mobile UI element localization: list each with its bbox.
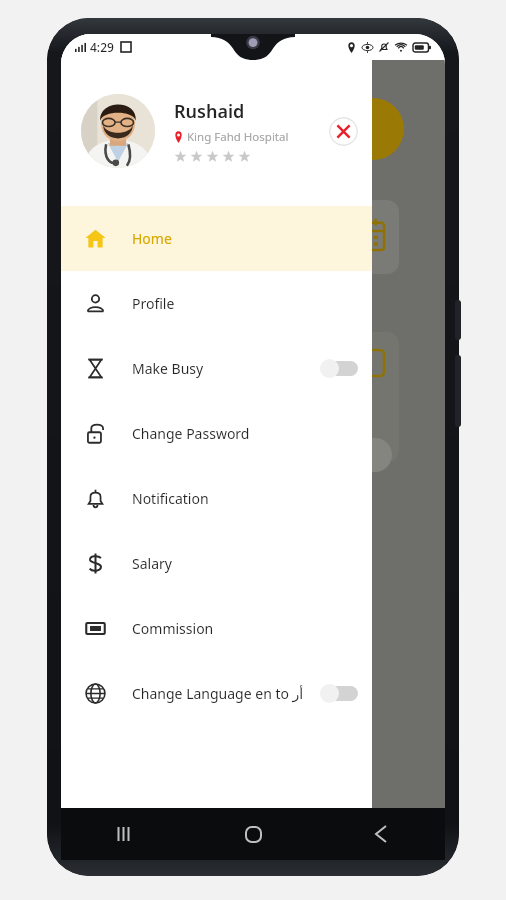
staticText: Rushaid [174,99,245,124]
button[interactable]: Home [189,808,317,860]
staticText: Make Busy [132,359,204,378]
staticText: Change Password [132,424,250,443]
button[interactable]: Toggle [320,684,358,703]
staticText: King Fahd Hospital [187,129,289,145]
button[interactable]: Recent apps [61,808,189,860]
button[interactable]: Close drawer [329,117,358,146]
staticText: Profile [132,294,175,313]
button[interactable]: Change Language en to أر [61,661,372,726]
staticText: Salary [132,554,172,573]
button[interactable]: Commission [61,596,372,661]
button[interactable]: Profile [61,271,372,336]
staticText: Change Language en to أر [132,684,304,703]
button[interactable]: Make Busy [61,336,372,401]
staticText: 4:29 [90,39,114,55]
button[interactable]: Change Password [61,401,372,466]
staticText: Home [132,229,172,248]
button[interactable]: Home [61,206,372,271]
button[interactable]: Notification [61,466,372,531]
button[interactable]: Salary [61,531,372,596]
staticText: Commission [132,619,214,638]
staticText: Notification [132,489,209,508]
button[interactable]: Back [317,808,445,860]
button[interactable]: Toggle [320,359,358,378]
